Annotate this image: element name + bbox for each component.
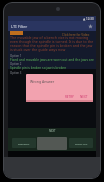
staticText: ▲ 12:30: [83, 17, 94, 21]
staticText: The movable jaw of a bench vice is not m…: [10, 35, 95, 52]
staticText: LTI Filter: [11, 24, 28, 29]
staticText: Option 2: [10, 62, 22, 66]
button[interactable]: PREVIOUS: [12, 138, 36, 148]
staticText: Spindle pin is broken so jaw is broken: [10, 66, 70, 70]
staticText: Option 3: [10, 71, 22, 75]
staticText: SHOW ANS: [75, 142, 88, 145]
button[interactable]: RETRY: [65, 95, 74, 99]
staticText: Wrong Answer: [30, 79, 55, 84]
button[interactable]: NEXT: [49, 129, 56, 133]
staticText: Fixed and movable jaws are worn out and …: [10, 57, 94, 61]
button[interactable]: [88, 24, 93, 29]
button[interactable]: NEXT: [80, 95, 88, 99]
staticText: PREVIOUS: [18, 142, 30, 145]
button[interactable]: SHOW ANS: [69, 138, 93, 148]
staticText: Option 1: [10, 54, 22, 58]
button[interactable]: Click here for Video: [62, 33, 90, 37]
